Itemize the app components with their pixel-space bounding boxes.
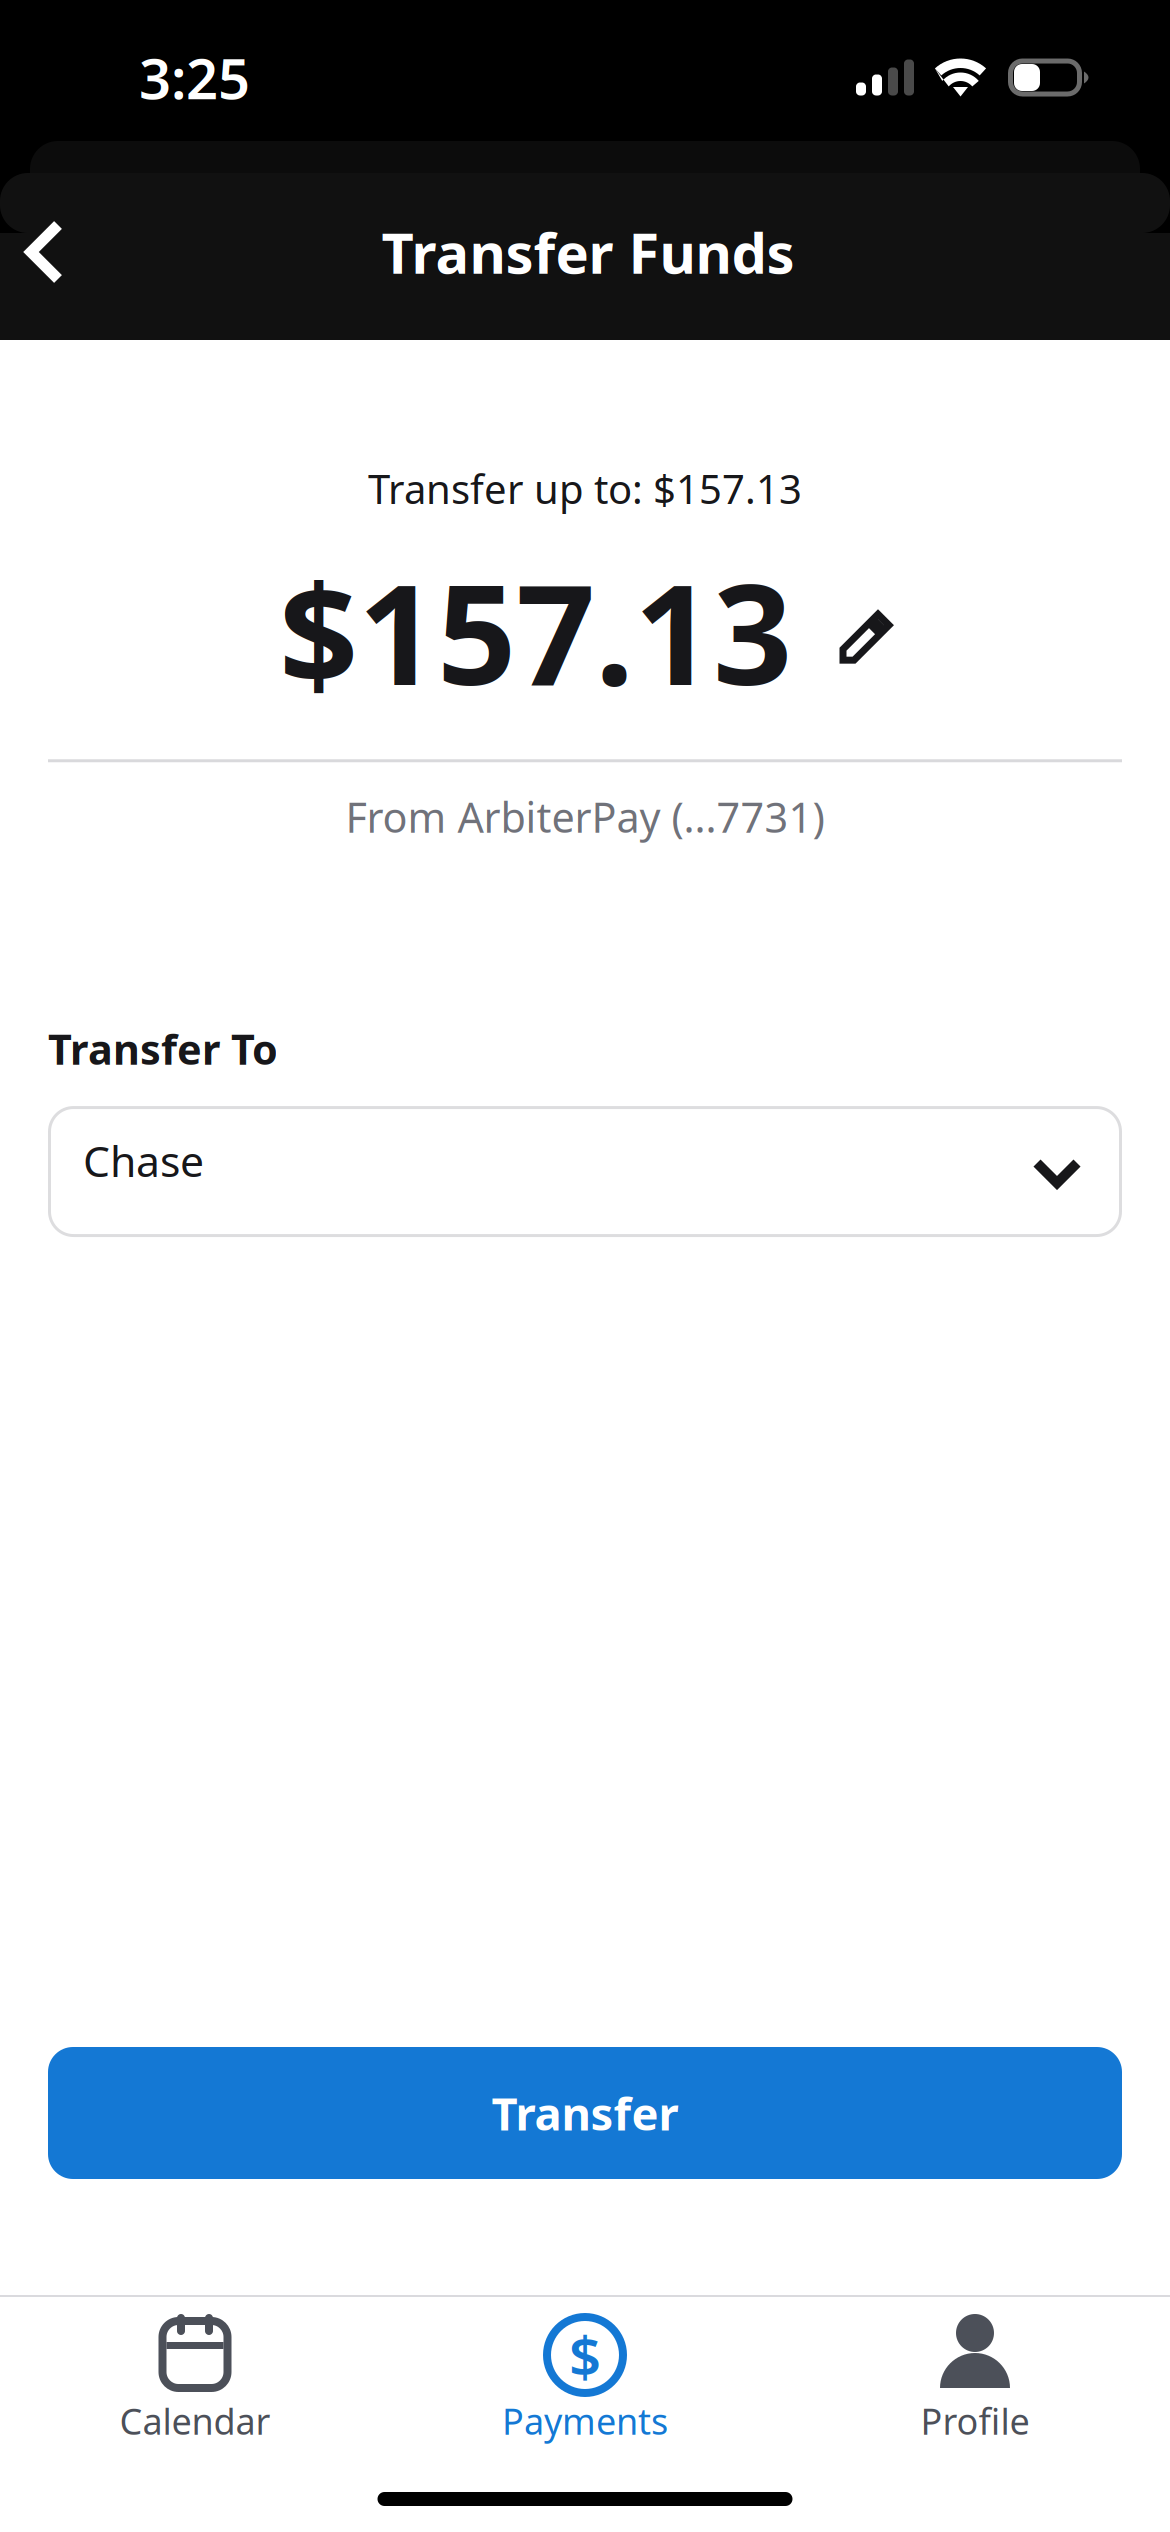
staticText: $ (569, 2318, 601, 2392)
staticText: Calendar (119, 2397, 270, 2445)
button[interactable]: Profile (780, 2297, 1170, 2449)
staticText: Transfer Funds (381, 215, 794, 289)
staticText: Profile (920, 2397, 1029, 2445)
staticText: Transfer To (48, 1021, 278, 1076)
staticText: Transfer (491, 2083, 678, 2143)
button[interactable]: $ (390, 2297, 780, 2449)
button[interactable]: Calendar (0, 2297, 390, 2449)
staticText: Transfer up to: $157.13 (368, 462, 802, 515)
staticText: From ArbiterPay (...7731) (345, 789, 824, 844)
button[interactable]: Edit amount (792, 567, 891, 695)
staticText: Chase (83, 1132, 204, 1189)
button[interactable]: Back (0, 173, 89, 340)
staticText: $157.13 (279, 539, 792, 723)
staticText: Payments (502, 2397, 668, 2445)
button[interactable]: Transfer (48, 2047, 1122, 2179)
staticText: 3:25 (139, 40, 250, 115)
button[interactable]: Chase (48, 1106, 1122, 1237)
